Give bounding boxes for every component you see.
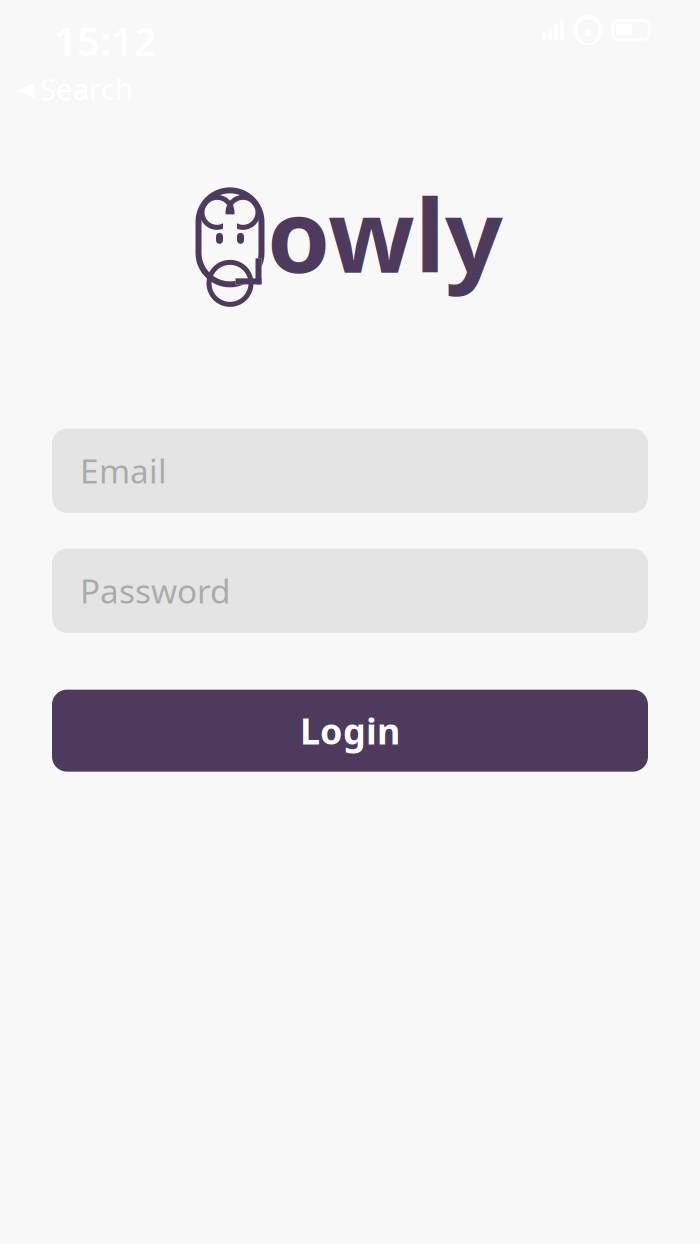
staticText: Email xyxy=(80,448,167,493)
staticText: Password xyxy=(80,568,231,613)
staticText: Login xyxy=(300,707,400,754)
staticText: owly xyxy=(267,166,503,301)
button[interactable]: Password xyxy=(52,549,648,633)
button[interactable]: Email xyxy=(52,429,648,513)
button[interactable]: Login xyxy=(52,690,648,772)
staticText: ◀ xyxy=(18,76,34,101)
